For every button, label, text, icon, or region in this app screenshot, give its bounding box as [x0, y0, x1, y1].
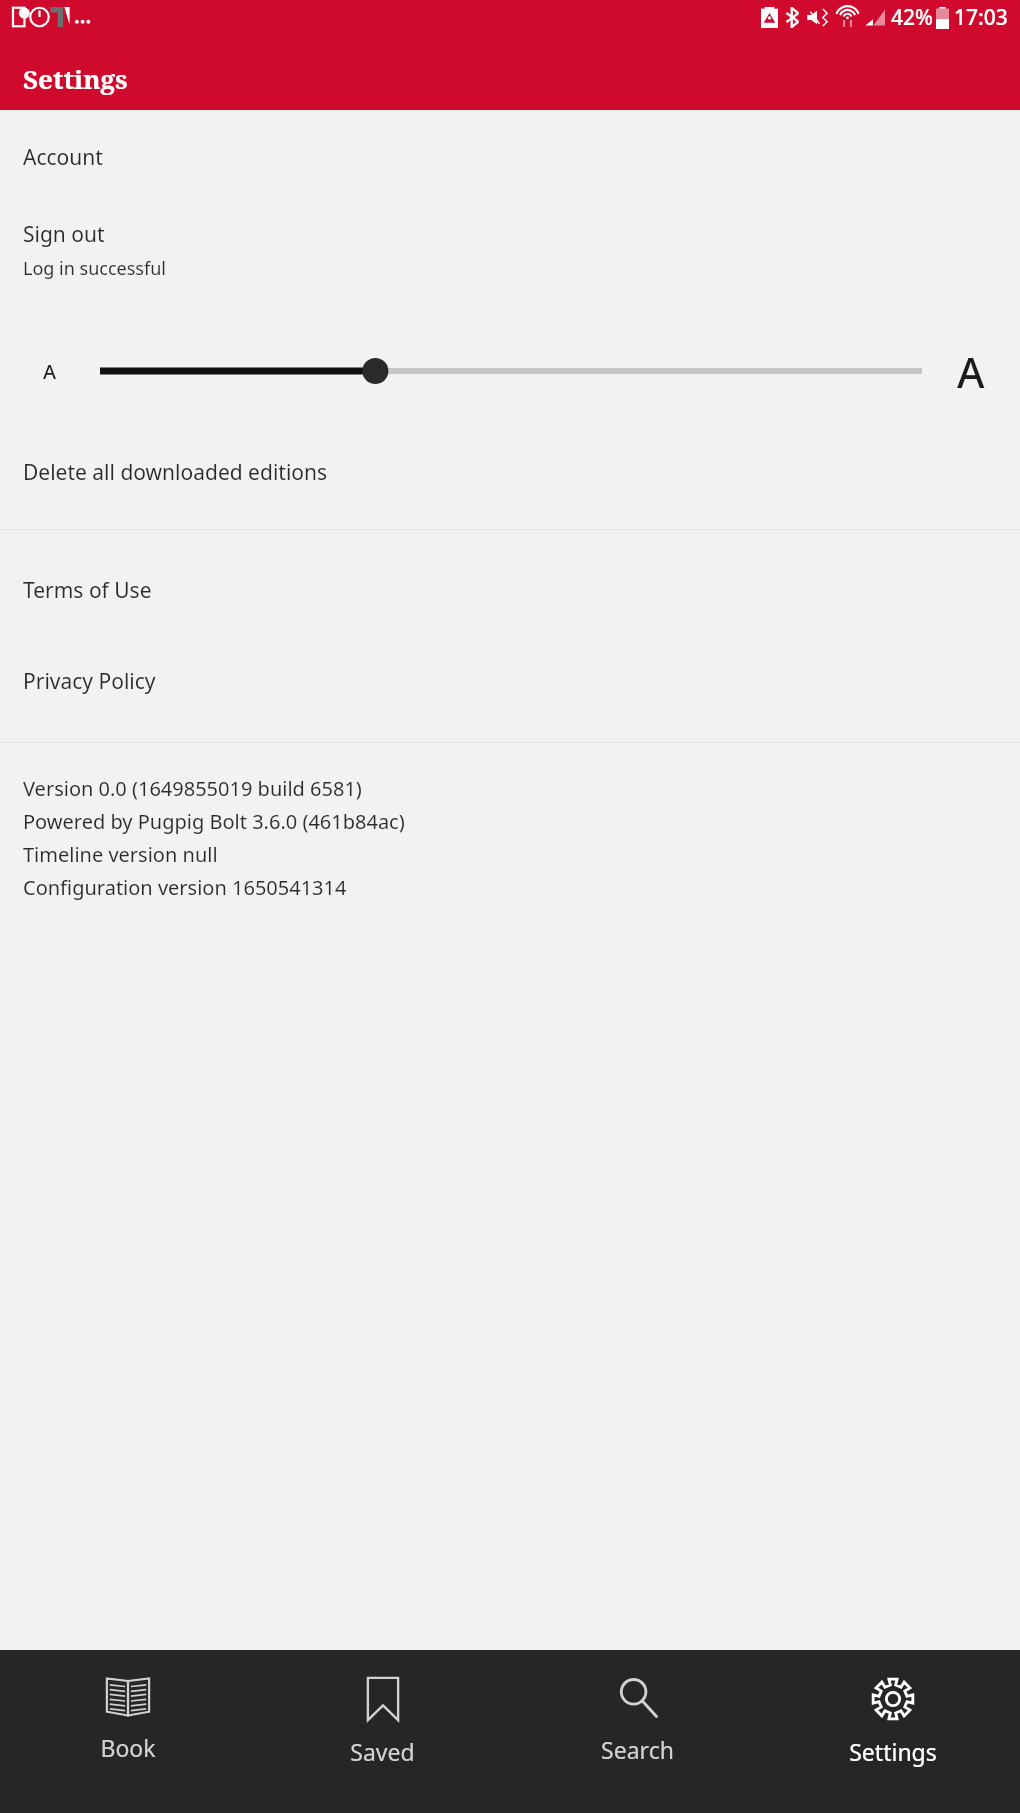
staticText: Account — [23, 143, 103, 172]
staticText: Timeline version null — [23, 841, 218, 868]
staticText: 17:03 — [954, 3, 1008, 32]
button[interactable]: Terms of Use — [0, 570, 1020, 611]
staticText: Search — [601, 1734, 674, 1765]
button[interactable]: Sign out — [0, 216, 1020, 285]
staticText: Book — [100, 1732, 156, 1763]
staticText: Sign out — [23, 220, 105, 249]
staticText: Settings — [849, 1736, 937, 1767]
button[interactable]: Search — [510, 1650, 765, 1813]
button[interactable]: Delete all downloaded editions — [0, 452, 1020, 493]
staticText: Delete all downloaded editions — [23, 458, 328, 487]
button[interactable]: Saved — [255, 1650, 510, 1813]
staticText: Version 0.0 (1649855019 build 6581) — [23, 775, 362, 802]
staticText: Terms of Use — [23, 576, 152, 605]
staticText: Powered by Pugpig Bolt 3.6.0 (461b84ac) — [23, 808, 405, 835]
button[interactable]: Book — [0, 1650, 255, 1813]
button[interactable]: Settings — [765, 1650, 1020, 1813]
button[interactable]: Privacy Policy — [0, 661, 1020, 702]
staticText: Saved — [350, 1736, 415, 1767]
staticText: 42% — [891, 3, 933, 32]
staticText: Configuration version 1650541314 — [23, 874, 347, 901]
staticText: Privacy Policy — [23, 667, 156, 696]
staticText: Settings — [23, 61, 128, 96]
button[interactable]: Account — [0, 137, 1020, 178]
staticText: A — [957, 343, 985, 400]
staticText: A — [43, 358, 57, 385]
button[interactable]: Text size — [100, 340, 922, 402]
staticText: Log in successful — [23, 256, 166, 281]
